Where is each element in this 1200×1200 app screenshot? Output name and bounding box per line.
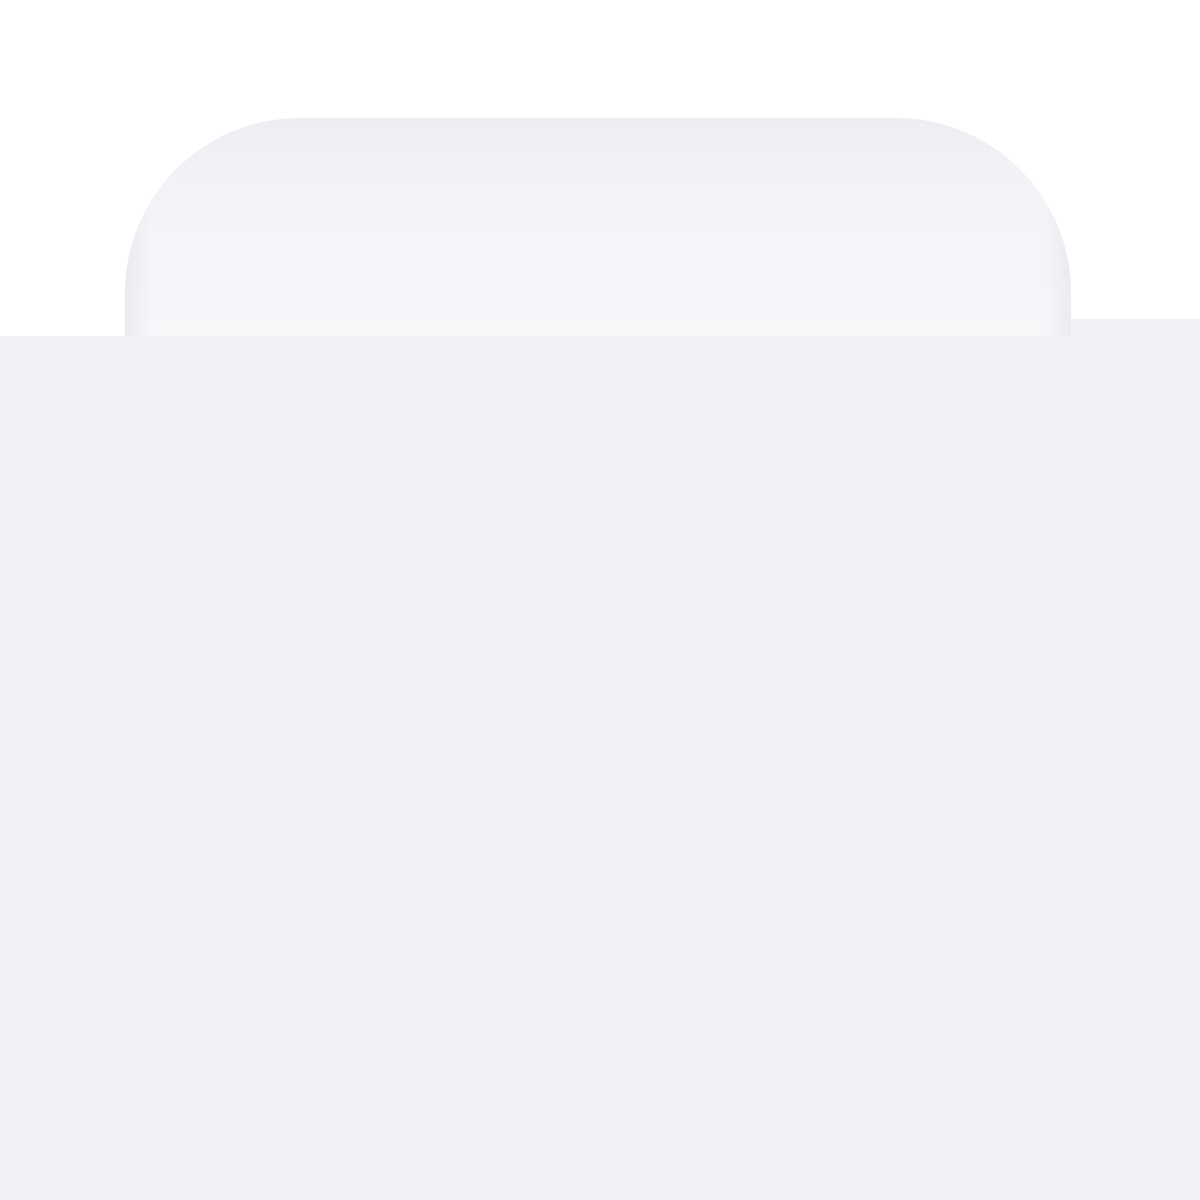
button[interactable]: Card [125, 118, 1071, 336]
